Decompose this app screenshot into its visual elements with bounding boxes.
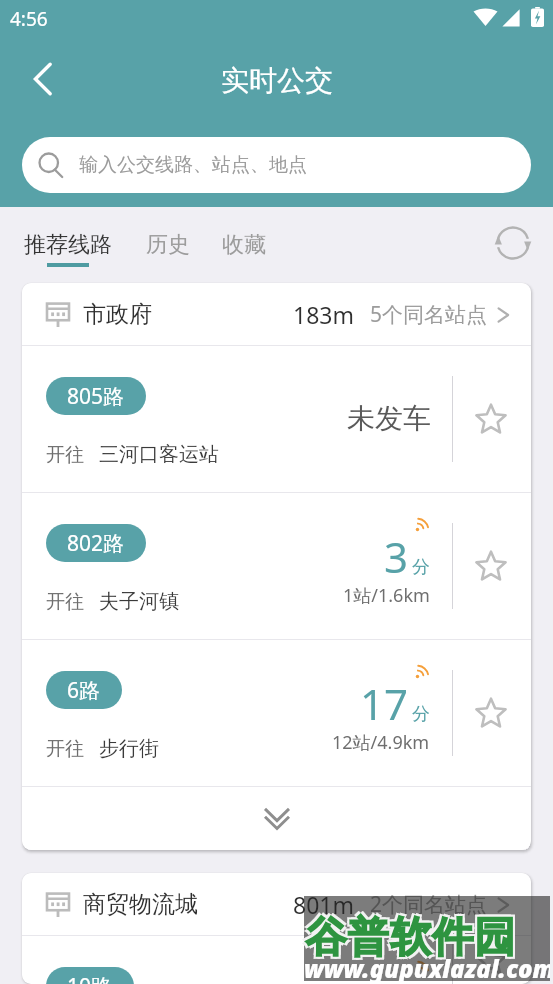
staticText: 推荐线路	[24, 231, 112, 259]
staticText: 1站/1.6km	[343, 583, 430, 608]
staticText: 4:56	[10, 6, 48, 32]
staticText: 805路	[67, 382, 125, 411]
staticText: 183m	[293, 299, 354, 330]
staticText: www.gupuxlazal.com	[304, 952, 550, 984]
staticText: 10路	[67, 972, 113, 984]
button[interactable]: 6路	[22, 640, 531, 786]
staticText: 商贸物流城	[83, 890, 198, 919]
button[interactable]: Back	[16, 52, 70, 106]
staticText: 801m	[293, 889, 354, 920]
staticText: 2个同名站点	[370, 890, 488, 919]
staticText: 步行街	[99, 736, 159, 761]
button[interactable]: Favorite	[458, 936, 524, 984]
button[interactable]: 商贸物流城	[22, 873, 531, 935]
staticText: 开往	[46, 443, 84, 467]
staticText: 输入公交线路、站点、地点	[79, 153, 307, 177]
button[interactable]: 10路	[22, 936, 531, 984]
button[interactable]: Favorite	[458, 665, 524, 761]
staticText: 夫子河镇	[99, 589, 179, 614]
staticText: 5个同名站点	[370, 300, 488, 329]
staticText: 谷普软件园	[307, 910, 518, 962]
staticText: 分	[412, 703, 430, 726]
button[interactable]: 历史	[146, 207, 190, 263]
staticText: 12站/4.9km	[332, 730, 430, 755]
button[interactable]: Favorite	[458, 518, 524, 614]
button[interactable]: 收藏	[222, 207, 266, 263]
button[interactable]: 802路	[22, 493, 531, 639]
staticText: 802路	[67, 529, 125, 558]
staticText: 谷普软件园	[303, 910, 514, 962]
staticText: 市政府	[83, 300, 152, 329]
button[interactable]: 市政府	[22, 283, 531, 345]
staticText: 谷普软件园	[303, 914, 514, 966]
staticText: 三河口客运站	[99, 442, 219, 467]
button[interactable]: Expand	[22, 787, 531, 850]
staticText: 开往	[46, 737, 84, 761]
staticText: 实时公交	[221, 63, 333, 98]
staticText: 收藏	[222, 231, 266, 259]
staticText: 未发车	[347, 401, 431, 436]
staticText: 谷普软件园	[307, 914, 518, 966]
button[interactable]: 输入公交线路、站点、地点	[22, 137, 531, 193]
staticText: 历史	[146, 231, 190, 259]
staticText: 谷普软件园	[305, 912, 516, 964]
button[interactable]: Refresh	[492, 222, 534, 264]
staticText: 分	[412, 556, 430, 579]
button[interactable]: 805路	[22, 346, 531, 492]
staticText: 6路	[67, 676, 101, 705]
staticText: 3	[384, 528, 409, 585]
staticText: 开往	[46, 590, 84, 614]
button[interactable]: 推荐线路	[24, 207, 112, 267]
staticText: 17	[360, 675, 409, 732]
button[interactable]: Favorite	[458, 371, 524, 467]
staticText: 5	[384, 971, 409, 984]
